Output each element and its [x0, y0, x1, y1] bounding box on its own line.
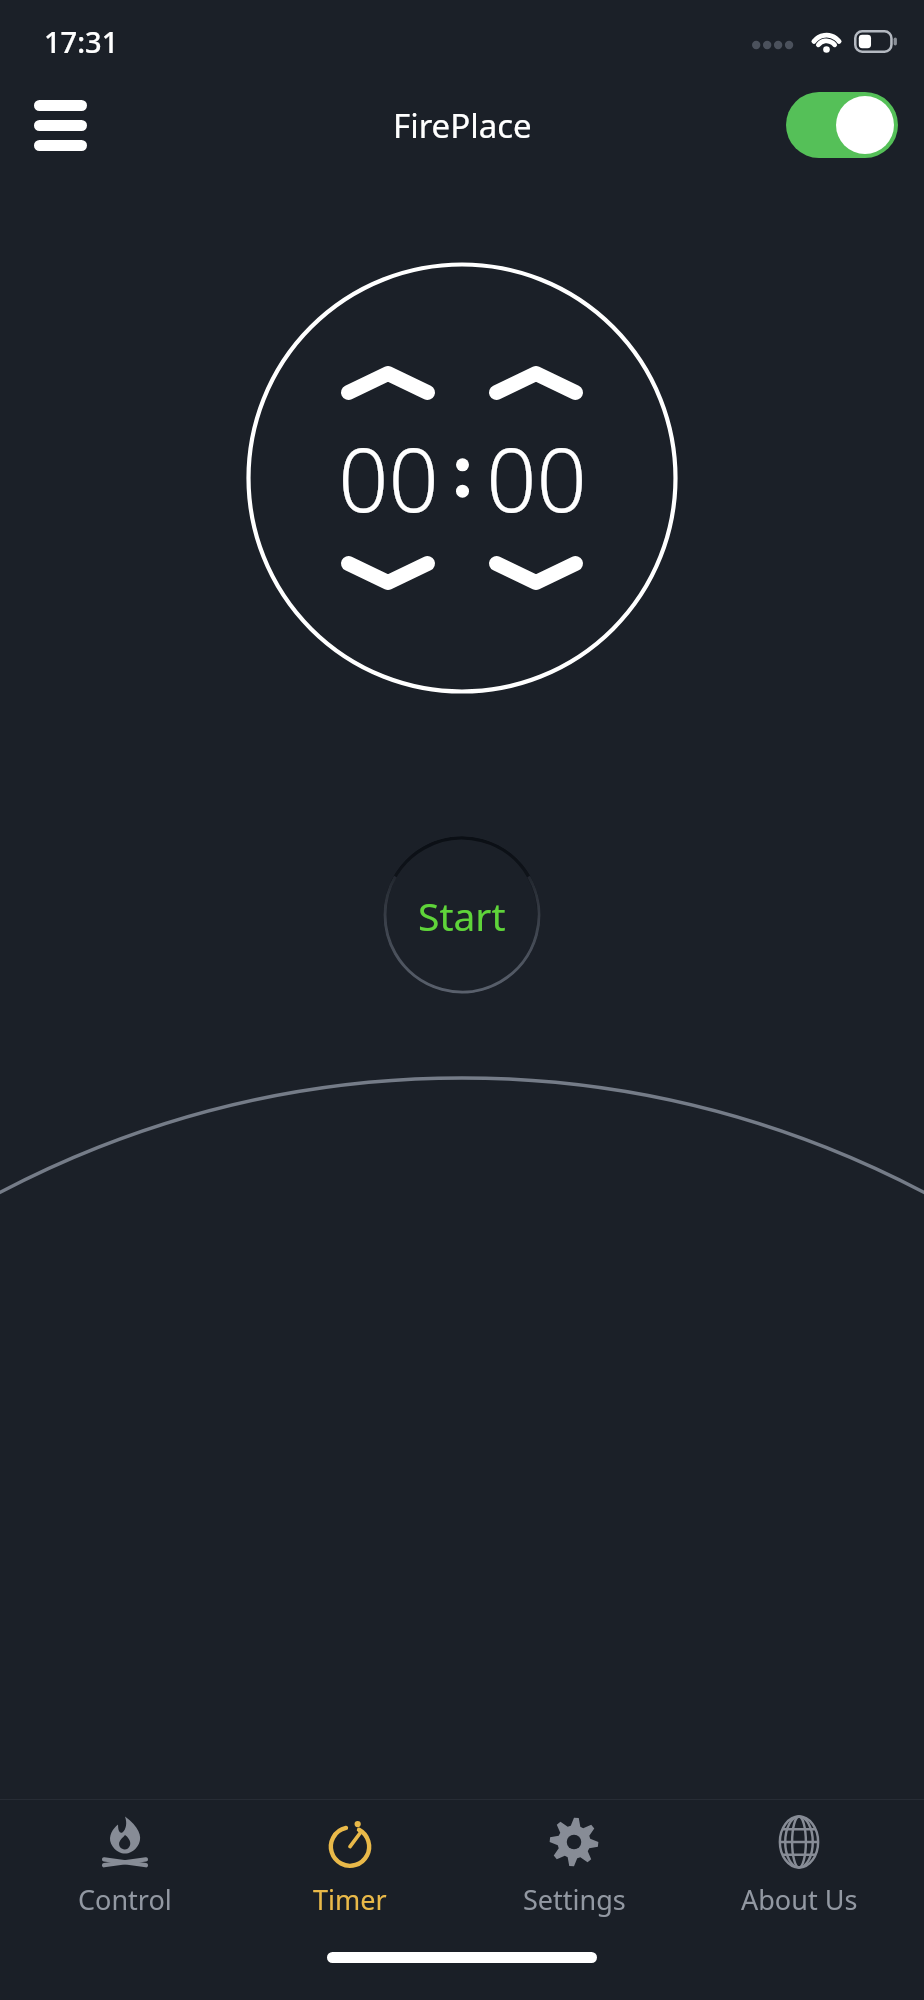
button[interactable]: Control: [25, 1800, 225, 1930]
button[interactable]: Increase Seconds: [478, 354, 594, 412]
staticText: FirePlace: [393, 103, 532, 148]
button[interactable]: About Us: [699, 1800, 899, 1930]
staticText: 17:31: [44, 22, 119, 61]
button[interactable]: Timer: [250, 1800, 450, 1930]
staticText: Start: [418, 889, 506, 942]
staticText: About Us: [741, 1881, 858, 1918]
button[interactable]: Menu: [16, 81, 104, 169]
button[interactable]: Decrease Seconds: [478, 544, 594, 602]
staticText: 00: [338, 418, 439, 538]
button[interactable]: Decrease Minutes: [330, 544, 446, 602]
button[interactable]: Increase Minutes: [330, 354, 446, 412]
staticText: Settings: [523, 1881, 626, 1918]
button[interactable]: Settings: [474, 1800, 674, 1930]
staticText: Control: [78, 1881, 172, 1918]
staticText: Timer: [313, 1881, 387, 1918]
button[interactable]: Power toggle: [786, 92, 898, 158]
button[interactable]: Start: [383, 836, 541, 994]
staticText: 00: [486, 418, 587, 538]
